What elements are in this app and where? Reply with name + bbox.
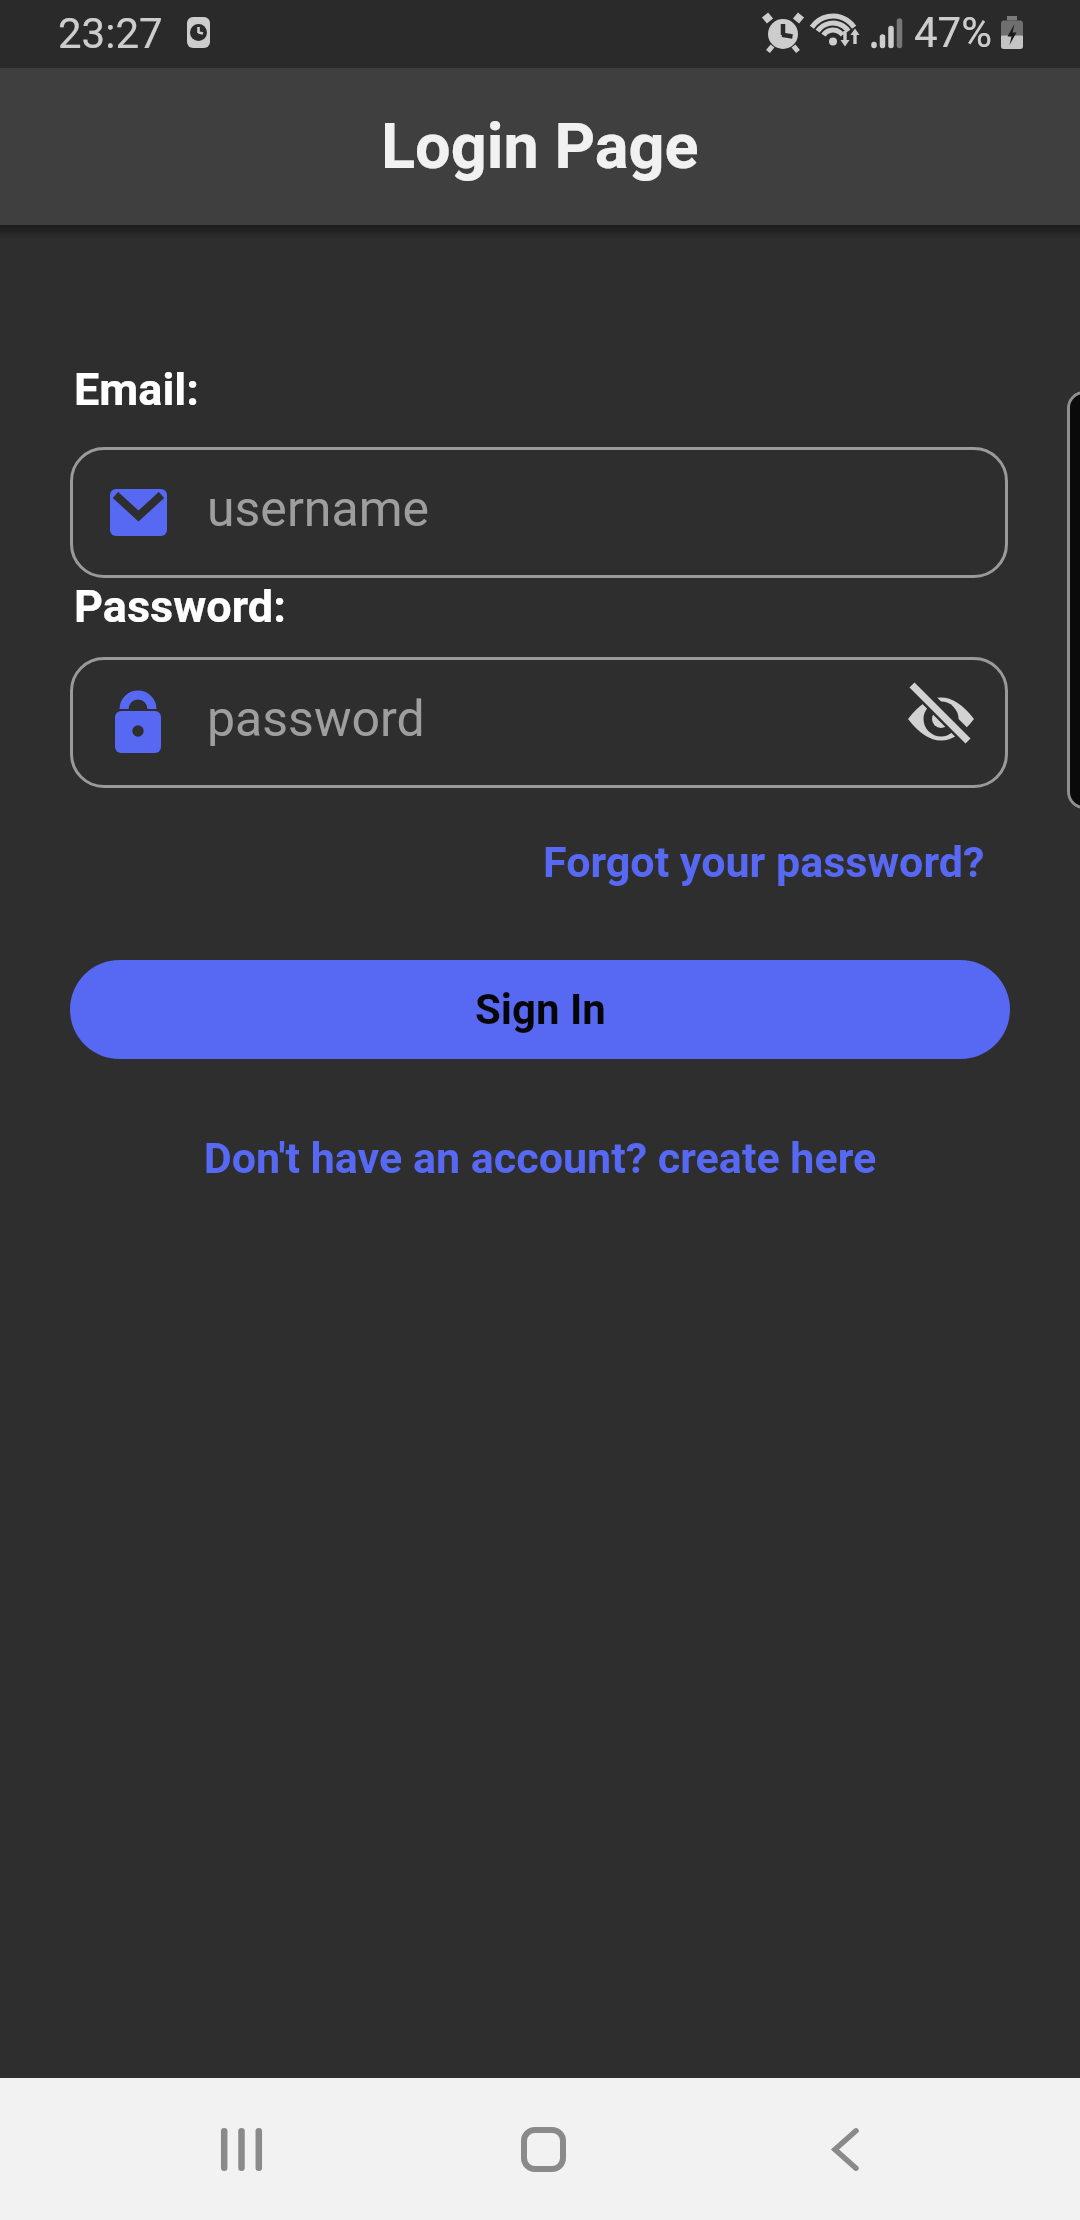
- staticText: password: [207, 690, 425, 749]
- button[interactable]: password: [70, 657, 1008, 788]
- staticText: Login Page: [381, 110, 699, 184]
- staticText: 47%: [914, 8, 992, 57]
- button[interactable]: [176, 2100, 306, 2198]
- staticText: Sign In: [475, 985, 606, 1034]
- button[interactable]: [478, 2100, 608, 2198]
- staticText: Email:: [74, 363, 199, 416]
- staticText: Password:: [74, 580, 286, 633]
- button[interactable]: [908, 693, 974, 753]
- button[interactable]: username: [70, 447, 1008, 578]
- button[interactable]: Forgot your password?: [543, 837, 985, 887]
- staticText: 23:27: [58, 9, 163, 58]
- button[interactable]: Sign In: [70, 960, 1010, 1059]
- button[interactable]: [780, 2100, 910, 2198]
- staticText: username: [207, 480, 429, 539]
- button[interactable]: Don't have an account? create here: [0, 1133, 1080, 1183]
